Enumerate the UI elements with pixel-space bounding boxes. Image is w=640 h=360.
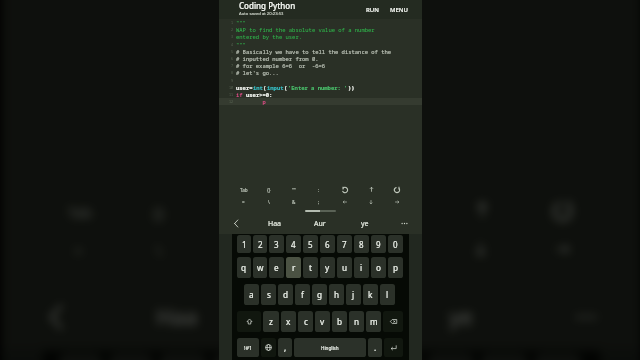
button[interactable]: MENU — [389, 3, 409, 17]
button[interactable]: Hinglish — [294, 338, 366, 357]
button[interactable]: t — [303, 257, 318, 278]
button[interactable]: Aur — [297, 213, 342, 234]
button[interactable]: i — [354, 257, 369, 278]
button[interactable]: redo — [522, 189, 603, 230]
button[interactable]: right — [384, 196, 410, 208]
button[interactable]: left — [358, 230, 440, 268]
button[interactable]: 9 — [371, 235, 386, 253]
staticText: RUN — [366, 6, 379, 14]
button[interactable]: 0 — [388, 235, 403, 253]
button[interactable]: z — [263, 311, 279, 332]
button[interactable]: redo — [384, 183, 410, 196]
button[interactable]: m — [366, 311, 381, 332]
button[interactable]: v — [315, 311, 330, 332]
button[interactable]: o — [371, 257, 386, 278]
button[interactable]: Haa — [109, 284, 248, 350]
button[interactable]: p — [388, 257, 403, 278]
button[interactable]: More options — [387, 213, 422, 234]
button[interactable]: h — [329, 284, 344, 305]
button[interactable]: undo — [332, 183, 358, 196]
button[interactable]: f — [295, 284, 310, 305]
staticText: )) — [348, 84, 355, 91]
button[interactable]: del — [383, 311, 403, 332]
button[interactable]: down — [358, 196, 384, 208]
button[interactable]: s — [261, 284, 276, 305]
button[interactable]: ye — [389, 284, 531, 350]
button[interactable]: 6 — [320, 353, 367, 360]
button[interactable]: Tab — [40, 189, 118, 230]
button[interactable]: = — [231, 196, 256, 208]
button[interactable]: x — [281, 311, 296, 332]
button[interactable]: r — [286, 257, 301, 278]
button[interactable]: ; — [276, 230, 358, 268]
button[interactable]: globe — [261, 338, 276, 357]
button[interactable]: "" — [197, 189, 276, 230]
button[interactable]: b — [332, 311, 347, 332]
button[interactable]: k — [363, 284, 378, 305]
button[interactable]: w — [253, 257, 267, 278]
button[interactable]: : — [276, 189, 358, 230]
button[interactable]: "" — [281, 183, 306, 196]
button[interactable]: : — [306, 183, 332, 196]
button[interactable]: ; — [306, 196, 332, 208]
button[interactable]: y — [320, 257, 335, 278]
staticText: c — [304, 316, 308, 327]
button[interactable]: shift — [237, 311, 261, 332]
button[interactable]: 6 — [320, 235, 335, 253]
button[interactable]: ye — [342, 213, 387, 234]
button[interactable]: 7 — [337, 235, 352, 253]
button[interactable]: , — [278, 338, 292, 357]
button[interactable]: Haa — [253, 213, 297, 234]
button[interactable]: e — [269, 257, 284, 278]
button[interactable]: 8 — [354, 235, 369, 253]
button[interactable]: !#1 — [237, 338, 259, 357]
button[interactable]: q — [237, 257, 251, 278]
staticText: 1 — [242, 239, 247, 250]
button[interactable]: left — [332, 196, 358, 208]
button[interactable]: u — [337, 257, 352, 278]
button[interactable]: 4 — [213, 353, 260, 360]
button[interactable]: n — [349, 311, 364, 332]
button[interactable]: & — [197, 230, 276, 268]
button[interactable]: & — [281, 196, 306, 208]
button[interactable]: \ — [256, 196, 281, 208]
button[interactable]: undo — [358, 189, 440, 230]
button[interactable]: 1 — [237, 235, 251, 253]
button[interactable]: 3 — [269, 235, 284, 253]
button[interactable]: Previous suggestions — [219, 213, 253, 234]
button[interactable]: {} — [256, 183, 281, 196]
button[interactable]: a — [244, 284, 259, 305]
button[interactable]: 5 — [303, 235, 318, 253]
button[interactable]: enter — [384, 338, 403, 357]
button[interactable]: j — [346, 284, 361, 305]
button[interactable]: 7 — [374, 353, 421, 360]
button[interactable]: 5 — [266, 353, 314, 360]
button[interactable]: . — [368, 338, 382, 357]
button[interactable]: Tab — [231, 183, 256, 196]
button[interactable]: 2 — [253, 235, 267, 253]
button[interactable]: g — [312, 284, 327, 305]
button[interactable]: c — [298, 311, 313, 332]
button[interactable]: RUN — [365, 3, 380, 17]
button[interactable]: up — [358, 183, 384, 196]
button[interactable]: 4 — [286, 235, 301, 253]
button[interactable]: Aur — [248, 284, 389, 350]
button[interactable]: l — [380, 284, 395, 305]
staticText: = — [242, 199, 245, 205]
staticText: !#1 — [244, 344, 253, 352]
button[interactable]: d — [278, 284, 293, 305]
